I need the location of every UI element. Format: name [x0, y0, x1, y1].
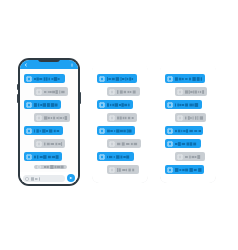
button[interactable]	[107, 113, 137, 122]
button[interactable]: Send	[67, 174, 75, 182]
button[interactable]	[107, 165, 139, 174]
button[interactable]	[97, 152, 134, 161]
button[interactable]: More options	[70, 63, 74, 67]
button[interactable]	[34, 139, 65, 148]
button[interactable]	[175, 113, 206, 122]
button[interactable]	[175, 152, 205, 161]
button[interactable]	[165, 139, 201, 148]
button[interactable]	[92, 63, 148, 183]
button[interactable]	[97, 126, 135, 135]
button[interactable]	[24, 126, 63, 135]
button[interactable]	[34, 87, 68, 96]
button[interactable]	[24, 74, 65, 83]
button[interactable]	[165, 126, 203, 135]
button[interactable]	[97, 100, 133, 109]
button[interactable]: Back	[24, 63, 28, 67]
button[interactable]	[24, 152, 62, 161]
button[interactable]	[107, 87, 140, 96]
button[interactable]	[160, 63, 216, 183]
button[interactable]	[97, 74, 137, 83]
button[interactable]	[34, 165, 67, 169]
button[interactable]	[34, 113, 70, 122]
button[interactable]	[23, 175, 65, 182]
button[interactable]	[175, 87, 207, 96]
button[interactable]	[165, 74, 205, 83]
button[interactable]	[165, 100, 202, 109]
button[interactable]	[24, 100, 61, 109]
button[interactable]	[107, 139, 141, 148]
button[interactable]	[165, 165, 204, 174]
